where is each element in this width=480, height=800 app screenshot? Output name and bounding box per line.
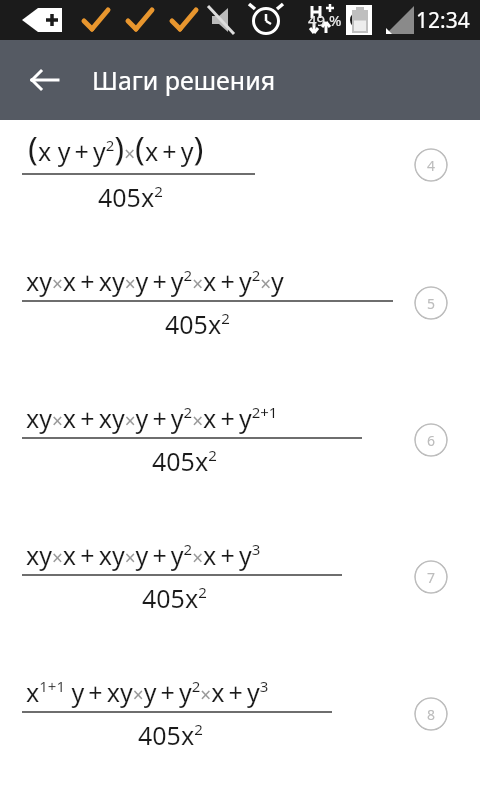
staticText: xy×x + xy×y + y2×x + y2+1 — [26, 401, 278, 435]
staticText: 7 — [427, 568, 436, 587]
button[interactable]: Step 4 — [414, 148, 448, 182]
staticText: xy×x + xy×y + y2×x + y3 — [26, 538, 261, 572]
staticText: 4 — [427, 156, 436, 175]
button[interactable]: Step 7 — [414, 560, 448, 594]
staticText: 12:34 — [416, 6, 470, 35]
staticText: 405x2 — [98, 180, 163, 214]
button[interactable]: xy×x + xy×y + y2×x + y2×y — [0, 258, 480, 395]
button[interactable]: x1+1 y + xy×y + y2×x + y3 — [0, 669, 480, 800]
button[interactable]: (x y + y2)×(x + y) — [0, 120, 480, 258]
staticText: 405x2 — [165, 307, 230, 341]
button[interactable]: Step 5 — [414, 286, 448, 320]
staticText: Шаги решения — [92, 63, 276, 97]
staticText: (x y + y2)×(x + y) — [28, 126, 204, 171]
staticText: 405x2 — [138, 718, 203, 752]
staticText: 405x2 — [142, 581, 207, 615]
button[interactable]: xy×x + xy×y + y2×x + y3 — [0, 532, 480, 669]
staticText: 49 % — [308, 10, 342, 30]
staticText: 8 — [427, 705, 436, 724]
staticText: xy×x + xy×y + y2×x + y2×y — [26, 264, 284, 298]
button[interactable]: xy×x + xy×y + y2×x + y2+1 — [0, 395, 480, 532]
button[interactable]: Step 6 — [414, 423, 448, 457]
staticText: x1+1 y + xy×y + y2×x + y3 — [26, 675, 269, 709]
staticText: 5 — [427, 294, 436, 313]
button[interactable]: Step 8 — [414, 697, 448, 731]
staticText: 405x2 — [152, 444, 217, 478]
staticText: 6 — [427, 431, 436, 450]
button[interactable]: Back — [20, 56, 68, 104]
